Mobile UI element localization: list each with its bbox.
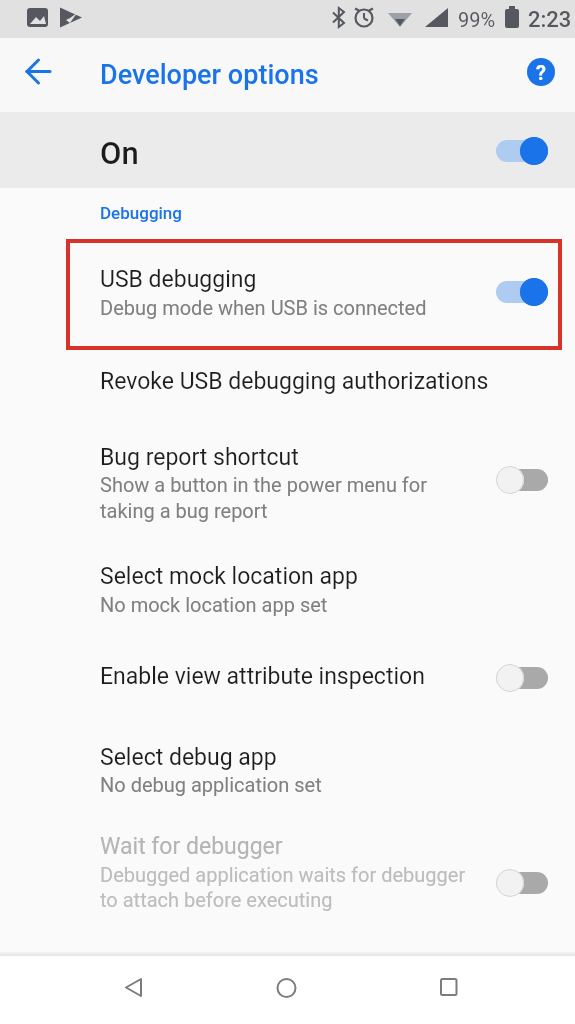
button[interactable] (496, 869, 548, 897)
button[interactable]: Select debug app (0, 720, 575, 815)
staticText: Revoke USB debugging authorizations (100, 368, 489, 395)
staticText: Select mock location app (100, 563, 358, 590)
button[interactable]: USB debugging (0, 243, 575, 347)
staticText: Developer options (100, 59, 319, 91)
button[interactable] (496, 278, 548, 306)
button[interactable]: Enable view attribute inspection (0, 640, 575, 720)
staticText: On (100, 135, 139, 171)
staticText: Select debug app (100, 744, 277, 771)
staticText: No debug application set (100, 773, 322, 796)
button[interactable]: Bug report shortcut (0, 420, 575, 540)
button[interactable]: Revoke USB debugging authorizations (0, 350, 575, 420)
button[interactable]: On (0, 112, 575, 188)
button[interactable]: ? (527, 58, 555, 86)
staticText: 2:23 (528, 7, 572, 33)
staticText: Wait for debugger (100, 833, 283, 860)
button[interactable] (496, 664, 548, 692)
staticText: Debug mode when USB is connected (100, 296, 427, 319)
button[interactable]: Select mock location app (0, 540, 575, 640)
staticText: ? (536, 61, 546, 84)
staticText: 99% (458, 8, 496, 31)
staticText: Debugging (100, 203, 182, 223)
staticText: No mock location app set (100, 593, 328, 616)
staticText: Show a button in the power menu for taki… (100, 473, 428, 522)
staticText: Debugged application waits for debugger … (100, 863, 466, 912)
button[interactable] (496, 466, 548, 494)
button[interactable] (496, 137, 548, 165)
button[interactable]: Wait for debugger (0, 815, 575, 935)
button[interactable] (428, 967, 468, 1007)
button[interactable] (114, 967, 154, 1007)
staticText: USB debugging (100, 266, 257, 293)
staticText: Bug report shortcut (100, 444, 299, 471)
button[interactable] (266, 968, 306, 1008)
staticText: Enable view attribute inspection (100, 663, 425, 690)
button[interactable] (18, 52, 58, 92)
